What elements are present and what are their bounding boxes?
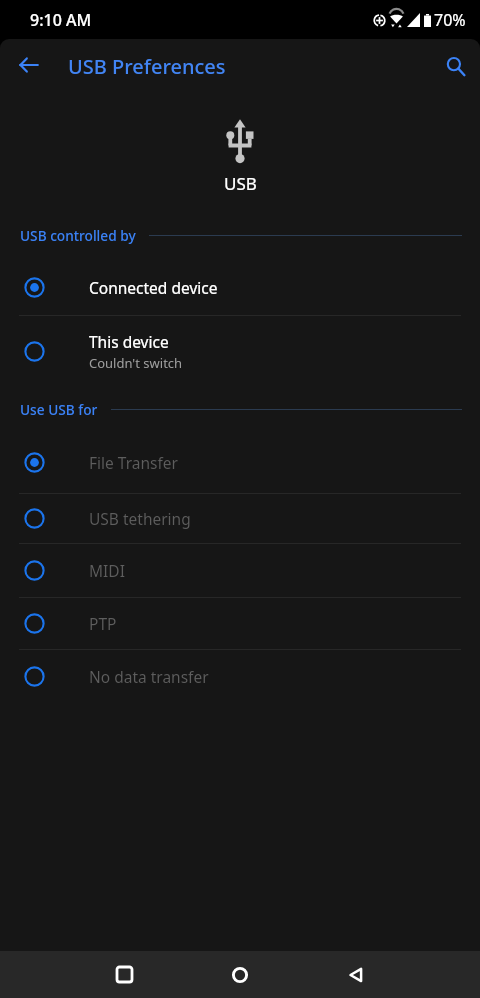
staticText: Couldn't switch (89, 354, 183, 372)
staticText: USB tethering (89, 508, 191, 529)
staticText: PTP (89, 613, 117, 634)
button[interactable]: PTP (0, 598, 480, 649)
staticText: This device (89, 331, 169, 352)
staticText: USB (224, 172, 257, 195)
staticText: 70% (434, 9, 466, 31)
staticText: MIDI (89, 560, 125, 581)
staticText: No data transfer (89, 666, 209, 687)
button[interactable]: Search (428, 44, 476, 92)
staticText: File Transfer (89, 452, 178, 473)
button[interactable]: Recent apps (0, 951, 160, 998)
button[interactable]: Home (160, 951, 320, 998)
staticText: USB controlled by (20, 226, 136, 245)
staticText: Connected device (89, 277, 218, 298)
button[interactable]: Back (4, 44, 52, 92)
staticText: USB Preferences (68, 53, 226, 80)
button[interactable]: MIDI (0, 544, 480, 597)
button[interactable]: File Transfer (0, 431, 480, 493)
button[interactable]: USB tethering (0, 494, 480, 543)
button[interactable]: Back (320, 951, 480, 998)
button[interactable]: This device (0, 316, 480, 386)
button[interactable]: No data transfer (0, 650, 480, 703)
button[interactable]: Connected device (0, 260, 480, 315)
staticText: 9:10 AM (30, 9, 92, 31)
staticText: Use USB for (20, 400, 98, 419)
